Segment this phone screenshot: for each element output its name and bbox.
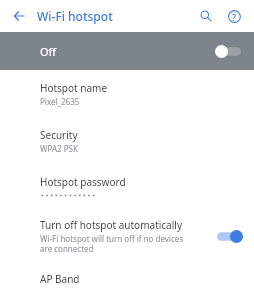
staticText: Off — [40, 44, 57, 59]
staticText: AP Band — [40, 272, 80, 286]
staticText: Hotspot name — [40, 81, 108, 95]
button[interactable]: Turn off hotspot automatically — [0, 208, 254, 262]
staticText: WPA2 PSK — [40, 143, 78, 154]
staticText: Wi-Fi hotspot will turn off if no device… — [40, 233, 184, 254]
staticText: Pixel_2635 — [40, 96, 80, 107]
button[interactable]: Back — [9, 6, 29, 26]
staticText: ? — [232, 11, 237, 23]
staticText: Security — [40, 128, 78, 142]
button[interactable]: Security — [0, 116, 254, 163]
staticText: Turn off hotspot automatically — [40, 218, 182, 232]
button[interactable]: Hotspot name — [0, 70, 254, 116]
button[interactable]: Search — [196, 6, 216, 26]
button[interactable]: Hotspot password — [0, 163, 254, 208]
staticText: Hotspot password — [40, 175, 126, 189]
button[interactable]: Help — [224, 6, 244, 26]
button[interactable]: AP Band — [0, 262, 254, 296]
button[interactable]: Off — [0, 32, 254, 70]
staticText: Wi-Fi hotspot — [37, 8, 113, 24]
